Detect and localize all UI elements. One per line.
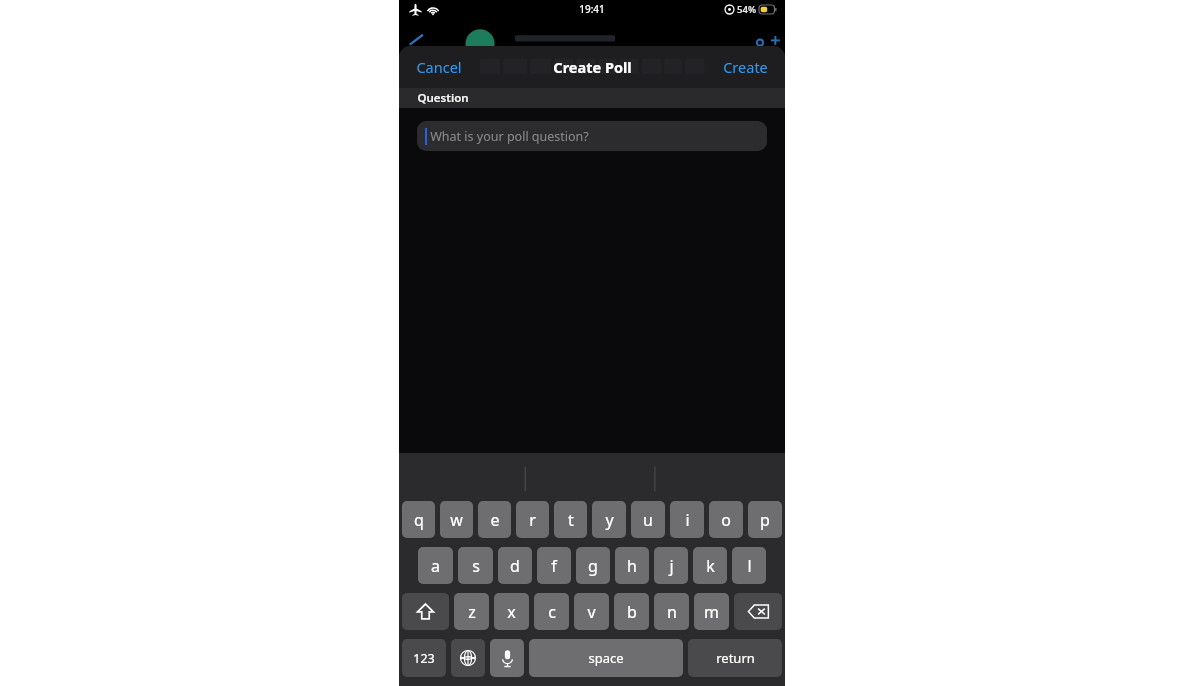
staticText: c — [548, 601, 556, 623]
button[interactable]: w — [440, 501, 473, 538]
button[interactable]: h — [615, 547, 649, 584]
staticText: z — [468, 601, 476, 623]
button[interactable]: d — [498, 547, 532, 584]
staticText: p — [760, 509, 770, 531]
button[interactable]: What is your poll question? — [417, 121, 767, 151]
button[interactable]: c — [534, 593, 569, 630]
staticText: y — [605, 509, 614, 531]
staticText: l — [747, 555, 752, 577]
button[interactable]: s — [458, 547, 493, 584]
staticText: o — [721, 509, 731, 531]
staticText: a — [431, 555, 440, 577]
button[interactable]: a — [418, 547, 453, 584]
staticText: t — [568, 509, 574, 531]
button[interactable]: v — [574, 593, 609, 630]
button[interactable]: m — [694, 593, 729, 630]
button[interactable]: return — [688, 639, 782, 677]
button[interactable]: e — [478, 501, 511, 538]
staticText: 19:41 — [579, 2, 605, 16]
staticText: d — [510, 555, 520, 577]
button[interactable]: Switch keyboard — [451, 639, 485, 677]
staticText: u — [643, 509, 653, 531]
staticText: v — [587, 601, 596, 623]
button[interactable]: o — [709, 501, 743, 538]
staticText: r — [529, 509, 536, 531]
staticText: f — [551, 555, 557, 577]
button[interactable]: 123 — [402, 639, 446, 677]
staticText: b — [627, 601, 637, 623]
button[interactable]: g — [576, 547, 610, 584]
button[interactable]: Create — [706, 48, 785, 86]
button[interactable]: f — [537, 547, 571, 584]
button[interactable]: Cancel — [399, 48, 479, 86]
staticText: s — [472, 555, 480, 577]
button[interactable]: Shift — [402, 593, 449, 630]
staticText: w — [450, 509, 463, 531]
button[interactable]: y — [592, 501, 626, 538]
staticText: Question — [417, 90, 469, 106]
staticText: i — [685, 509, 690, 531]
staticText: k — [706, 555, 715, 577]
button[interactable]: b — [614, 593, 649, 630]
staticText: j — [669, 555, 674, 577]
staticText: e — [490, 509, 500, 531]
staticText: What is your poll question? — [430, 128, 589, 145]
button[interactable]: x — [494, 593, 529, 630]
staticText: m — [704, 601, 719, 623]
staticText: Cancel — [416, 57, 462, 77]
button[interactable]: space — [529, 639, 683, 677]
button[interactable]: k — [693, 547, 727, 584]
button[interactable]: Dictation — [490, 639, 524, 677]
button[interactable]: j — [654, 547, 688, 584]
button[interactable]: q — [402, 501, 435, 538]
button[interactable]: z — [454, 593, 489, 630]
button[interactable]: t — [554, 501, 587, 538]
staticText: 54% — [737, 3, 756, 16]
staticText: h — [627, 555, 637, 577]
button[interactable]: u — [631, 501, 665, 538]
button[interactable]: r — [516, 501, 549, 538]
staticText: 123 — [413, 650, 435, 667]
staticText: space — [588, 649, 624, 667]
button[interactable]: n — [654, 593, 689, 630]
button[interactable]: p — [748, 501, 782, 538]
button[interactable]: l — [732, 547, 766, 584]
staticText: n — [667, 601, 677, 623]
staticText: x — [507, 601, 516, 623]
staticText: g — [588, 555, 598, 577]
staticText: Create — [723, 57, 768, 77]
button[interactable]: i — [670, 501, 704, 538]
staticText: q — [414, 509, 424, 531]
button[interactable]: Backspace — [734, 593, 782, 630]
staticText: return — [716, 649, 755, 667]
staticText: Create Poll — [553, 57, 632, 77]
